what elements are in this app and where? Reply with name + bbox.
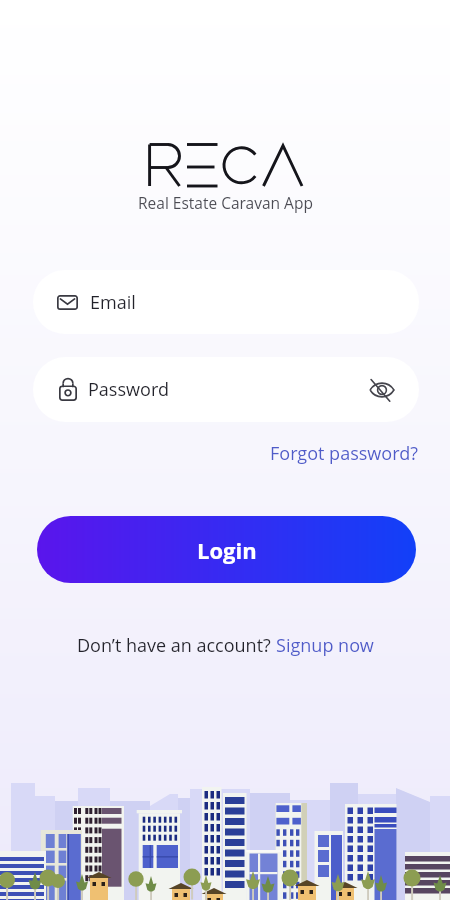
staticText: Real Estate Caravan App (138, 192, 313, 213)
button[interactable]: Signup now (276, 633, 374, 658)
button[interactable]: Email (33, 270, 419, 334)
staticText: Email (90, 290, 136, 315)
button[interactable]: Forgot password? (270, 441, 418, 466)
button[interactable]: Show password (367, 375, 397, 405)
staticText: Don’t have an account? (77, 633, 276, 658)
staticText: Login (197, 535, 257, 565)
staticText: Password (88, 377, 169, 402)
button[interactable]: Login (37, 516, 416, 583)
button[interactable]: Password (33, 357, 419, 422)
